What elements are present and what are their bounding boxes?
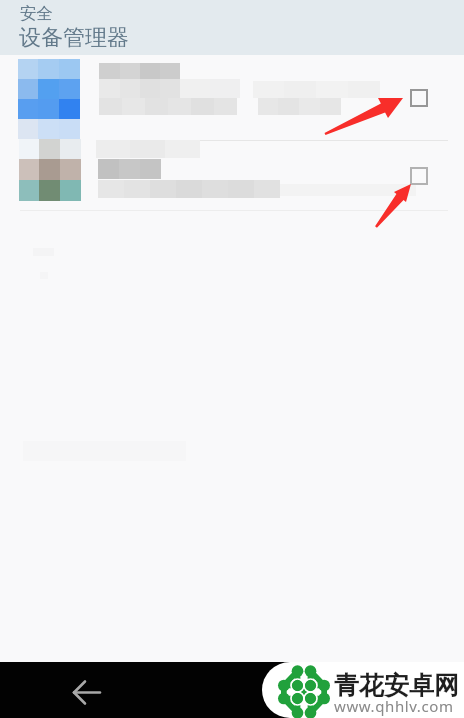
button[interactable]: Select device admin 2 bbox=[410, 167, 428, 185]
staticText: 青花安卓网 bbox=[334, 670, 459, 701]
staticText: www.qhhlv.com bbox=[334, 696, 454, 716]
button[interactable]: Select device admin 1 bbox=[410, 89, 428, 107]
staticText: 设备管理器 bbox=[19, 24, 129, 52]
button[interactable]: Back bbox=[62, 662, 114, 718]
staticText: 安全 bbox=[20, 3, 53, 24]
